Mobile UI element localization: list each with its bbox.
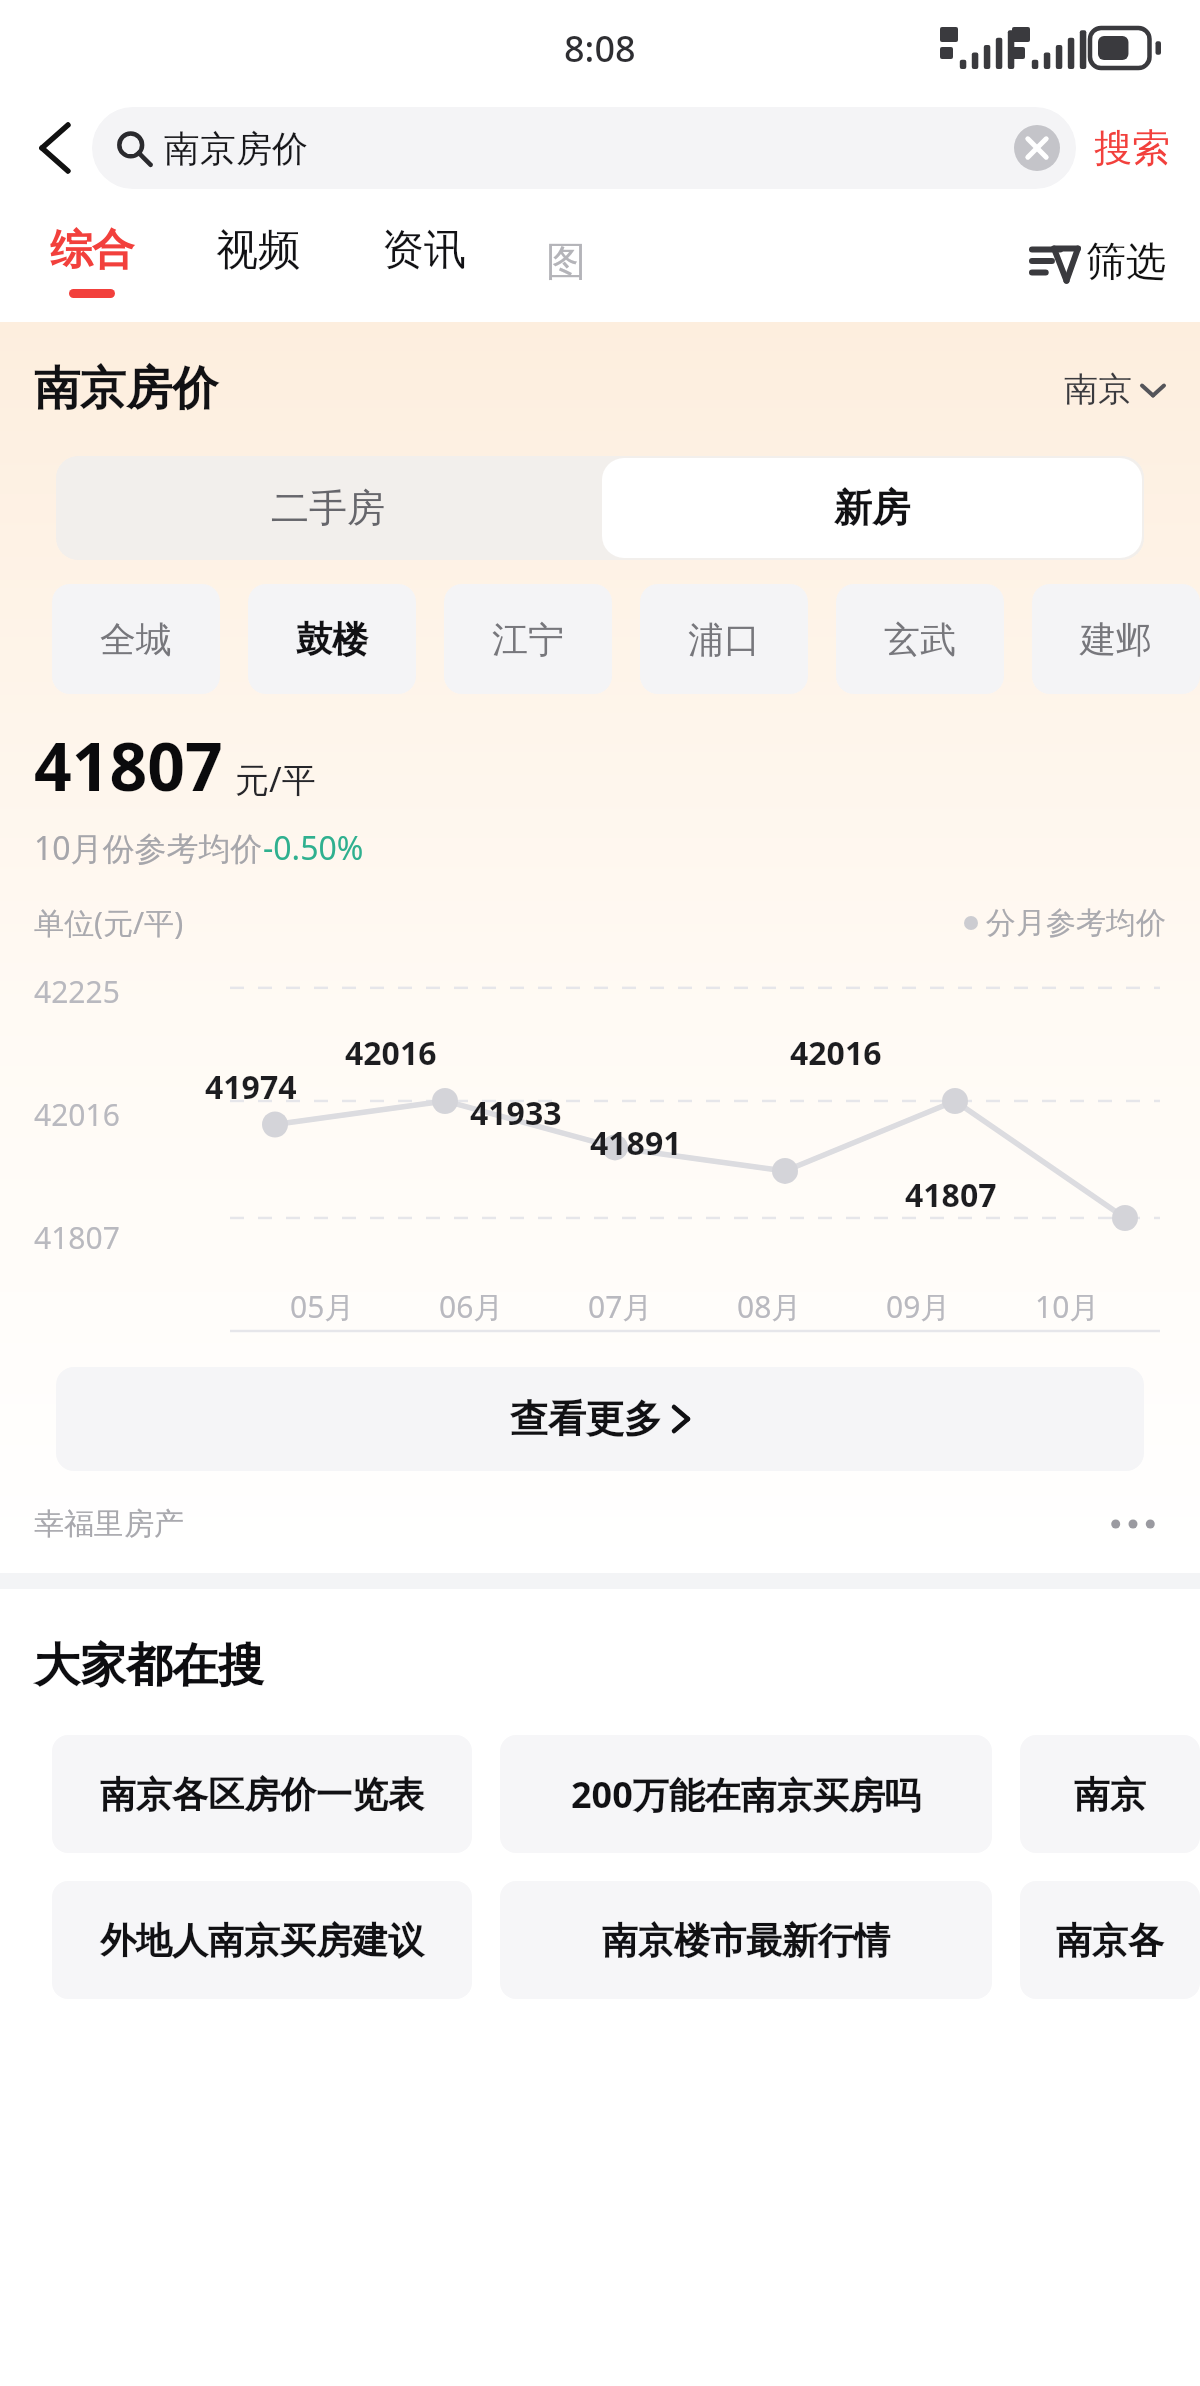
staticText: 42016 [34, 1094, 120, 1135]
staticText: 鼓楼 [296, 617, 368, 662]
staticText: 09月 [886, 1286, 951, 1327]
button[interactable]: Back [18, 115, 84, 181]
staticText: 42016 [345, 1031, 437, 1075]
button[interactable]: 江宁 [444, 584, 612, 694]
staticText: 南京 [1064, 368, 1132, 411]
staticText: 浦口 [688, 617, 760, 662]
staticText: 41974 [205, 1065, 297, 1109]
staticText: 07月 [588, 1286, 653, 1327]
button[interactable]: 二手房 [56, 456, 600, 560]
staticText: -0.50% [263, 826, 364, 870]
staticText: 元/平 [235, 756, 316, 802]
button[interactable]: 浦口 [640, 584, 808, 694]
staticText: 41891 [590, 1121, 682, 1165]
staticText: 10月 [1035, 1286, 1100, 1327]
staticText: 南京房价 [34, 360, 218, 418]
staticText: 搜索 [1094, 124, 1170, 172]
button[interactable]: 外地人南京买房建议 [52, 1881, 472, 1999]
staticText: 单位(元/平) [34, 902, 184, 943]
staticText: 资讯 [382, 224, 466, 277]
button[interactable]: Filter [1028, 235, 1200, 287]
button[interactable]: More [1106, 1506, 1160, 1542]
button[interactable]: 搜索 [1090, 114, 1174, 182]
staticText: 二手房 [271, 484, 385, 532]
button[interactable]: 新房 [602, 458, 1142, 558]
button[interactable]: 200万能在南京买房吗 [500, 1735, 992, 1853]
staticText: 筛选 [1086, 236, 1166, 286]
button[interactable]: 全城 [52, 584, 220, 694]
staticText: 08月 [737, 1286, 802, 1327]
staticText: 06月 [439, 1286, 504, 1327]
staticText: 41807 [34, 1217, 120, 1258]
staticText: 幸福里房产 [34, 1505, 184, 1543]
button[interactable]: 建邺 [1032, 584, 1200, 694]
staticText: 41807 [34, 720, 223, 810]
staticText: 8:08 [564, 24, 636, 73]
button[interactable]: 南京 [1020, 1735, 1200, 1853]
staticText: 10月份参考均价 [34, 826, 263, 870]
staticText: 南京楼市最新行情 [602, 1918, 890, 1963]
staticText: 南京房价 [164, 126, 1014, 171]
staticText: 南京 [1074, 1772, 1146, 1817]
button[interactable]: Clear [1014, 125, 1060, 171]
staticText: 200万能在南京买房吗 [571, 1770, 921, 1819]
staticText: 综合 [50, 224, 134, 277]
staticText: 查看更多 [510, 1395, 662, 1443]
staticText: 视频 [216, 224, 300, 277]
staticText: 建邺 [1080, 617, 1152, 662]
staticText: 图 [546, 236, 586, 286]
staticText: 分月参考均价 [986, 904, 1166, 942]
button[interactable]: 综合 [48, 220, 136, 302]
button[interactable]: 资讯 [380, 220, 468, 302]
staticText: 南京各 [1056, 1918, 1164, 1963]
staticText: 大家都在搜 [34, 1637, 264, 1695]
button[interactable]: 玄武 [836, 584, 1004, 694]
staticText: 江宁 [492, 617, 564, 662]
button[interactable]: 鼓楼 [248, 584, 416, 694]
staticText: 外地人南京买房建议 [100, 1918, 424, 1963]
staticText: 41807 [905, 1173, 997, 1217]
staticText: 42225 [34, 971, 120, 1012]
button[interactable]: 南京楼市最新行情 [500, 1881, 992, 1999]
other: Filter [1028, 235, 1080, 287]
button[interactable]: 南京各 [1020, 1881, 1200, 1999]
staticText: 南京各区房价一览表 [100, 1772, 424, 1817]
button[interactable]: 南京房价 [92, 107, 1076, 189]
staticText: 42016 [790, 1031, 882, 1075]
staticText: 全城 [100, 617, 172, 662]
button[interactable]: 视频 [214, 220, 302, 302]
staticText: 05月 [290, 1286, 355, 1327]
button[interactable]: 查看更多 [56, 1367, 1144, 1471]
staticText: 41933 [470, 1091, 562, 1135]
button[interactable]: 南京 [1064, 368, 1166, 411]
staticText: 玄武 [884, 617, 956, 662]
staticText: 新房 [834, 484, 910, 532]
button[interactable]: 南京各区房价一览表 [52, 1735, 472, 1853]
